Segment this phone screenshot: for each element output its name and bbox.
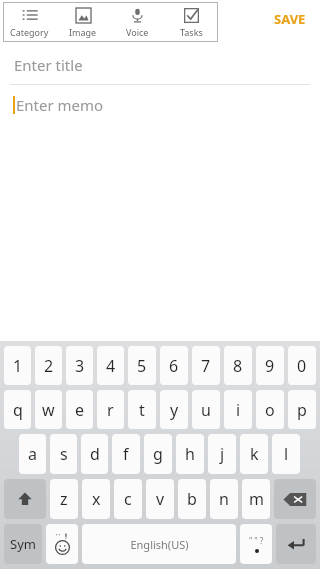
staticText: Sym — [10, 535, 36, 553]
button[interactable]: Shift — [4, 479, 46, 519]
button[interactable]: " " ? — [240, 524, 272, 564]
button[interactable]: r — [97, 390, 124, 429]
button[interactable]: 0 — [288, 346, 316, 385]
button[interactable]: f — [112, 434, 140, 474]
staticText: SAVE — [274, 10, 306, 28]
staticText: l — [284, 443, 289, 465]
button[interactable]: v — [146, 479, 174, 519]
button[interactable]: l — [272, 434, 300, 474]
staticText: Tasks — [180, 26, 203, 38]
button[interactable]: 7 — [192, 346, 220, 385]
staticText: n — [219, 488, 229, 510]
staticText: 9 — [265, 355, 275, 377]
button[interactable]: e — [66, 390, 93, 429]
staticText: q — [13, 399, 23, 421]
button[interactable]: Category — [3, 2, 56, 42]
button[interactable]: b — [178, 479, 206, 519]
staticText: x — [92, 488, 101, 510]
staticText: z — [60, 488, 68, 510]
button[interactable]: 3 — [66, 346, 93, 385]
staticText: f — [123, 443, 129, 465]
button[interactable]: s — [50, 434, 77, 474]
button[interactable]: y — [160, 390, 188, 429]
button[interactable]: Tasks — [164, 2, 218, 42]
staticText: 8 — [233, 355, 243, 377]
button[interactable]: 1 — [4, 346, 31, 385]
staticText: p — [297, 399, 307, 421]
button[interactable]: a — [19, 434, 46, 474]
button[interactable]: Emoji and voice input — [46, 524, 78, 564]
staticText: h — [185, 443, 195, 465]
staticText: 4 — [106, 355, 116, 377]
button[interactable]: m — [242, 479, 270, 519]
staticText: 5 — [137, 355, 147, 377]
staticText: a — [28, 443, 37, 465]
staticText: v — [156, 488, 165, 510]
button[interactable]: 6 — [160, 346, 188, 385]
button[interactable]: x — [82, 479, 110, 519]
staticText: Enter memo — [16, 95, 104, 115]
staticText: 3 — [75, 355, 85, 377]
button[interactable]: Enter title — [0, 46, 320, 85]
button[interactable]: Enter memo — [0, 85, 320, 125]
staticText: k — [250, 443, 259, 465]
button[interactable]: c — [114, 479, 142, 519]
button[interactable]: i — [224, 390, 252, 429]
staticText: d — [90, 443, 100, 465]
staticText: Voice — [126, 26, 149, 38]
staticText: 0 — [297, 355, 307, 377]
button[interactable]: 2 — [35, 346, 62, 385]
staticText: u — [201, 399, 211, 421]
staticText: Image — [69, 26, 97, 38]
button[interactable]: Sym — [4, 524, 42, 564]
button[interactable]: g — [144, 434, 172, 474]
staticText: r — [107, 399, 114, 421]
staticText: o — [265, 399, 275, 421]
staticText: j — [220, 443, 225, 465]
button[interactable]: Enter — [276, 524, 316, 564]
staticText: w — [42, 399, 55, 421]
staticText: s — [60, 443, 68, 465]
button[interactable]: j — [208, 434, 236, 474]
button[interactable]: 9 — [256, 346, 284, 385]
staticText: English(US) — [130, 537, 189, 552]
staticText: t — [139, 399, 145, 421]
button[interactable]: Voice — [110, 2, 164, 42]
button[interactable]: 8 — [224, 346, 252, 385]
staticText: m — [249, 488, 264, 510]
button[interactable]: English(US) — [82, 524, 236, 564]
staticText: g — [153, 443, 163, 465]
staticText: 7 — [201, 355, 211, 377]
staticText: y — [170, 399, 179, 421]
staticText: 6 — [169, 355, 179, 377]
button[interactable]: o — [256, 390, 284, 429]
button[interactable]: Image — [56, 2, 110, 42]
staticText: i — [236, 399, 241, 421]
button[interactable]: z — [50, 479, 78, 519]
staticText: e — [75, 399, 85, 421]
staticText: 2 — [44, 355, 54, 377]
button[interactable]: k — [240, 434, 268, 474]
button[interactable]: n — [210, 479, 238, 519]
staticText: Enter title — [14, 55, 83, 75]
button[interactable]: w — [35, 390, 62, 429]
staticText: c — [124, 488, 132, 510]
button[interactable]: 5 — [128, 346, 156, 385]
button[interactable]: p — [288, 390, 316, 429]
button[interactable]: q — [4, 390, 31, 429]
button[interactable]: SAVE — [268, 6, 312, 32]
button[interactable]: Backspace — [274, 479, 316, 519]
staticText: " " ? — [249, 535, 264, 546]
staticText: b — [187, 488, 197, 510]
staticText: Category — [10, 26, 49, 38]
button[interactable]: t — [128, 390, 156, 429]
button[interactable]: d — [81, 434, 108, 474]
button[interactable]: u — [192, 390, 220, 429]
button[interactable]: h — [176, 434, 204, 474]
button[interactable]: 4 — [97, 346, 124, 385]
staticText: 1 — [13, 355, 23, 377]
